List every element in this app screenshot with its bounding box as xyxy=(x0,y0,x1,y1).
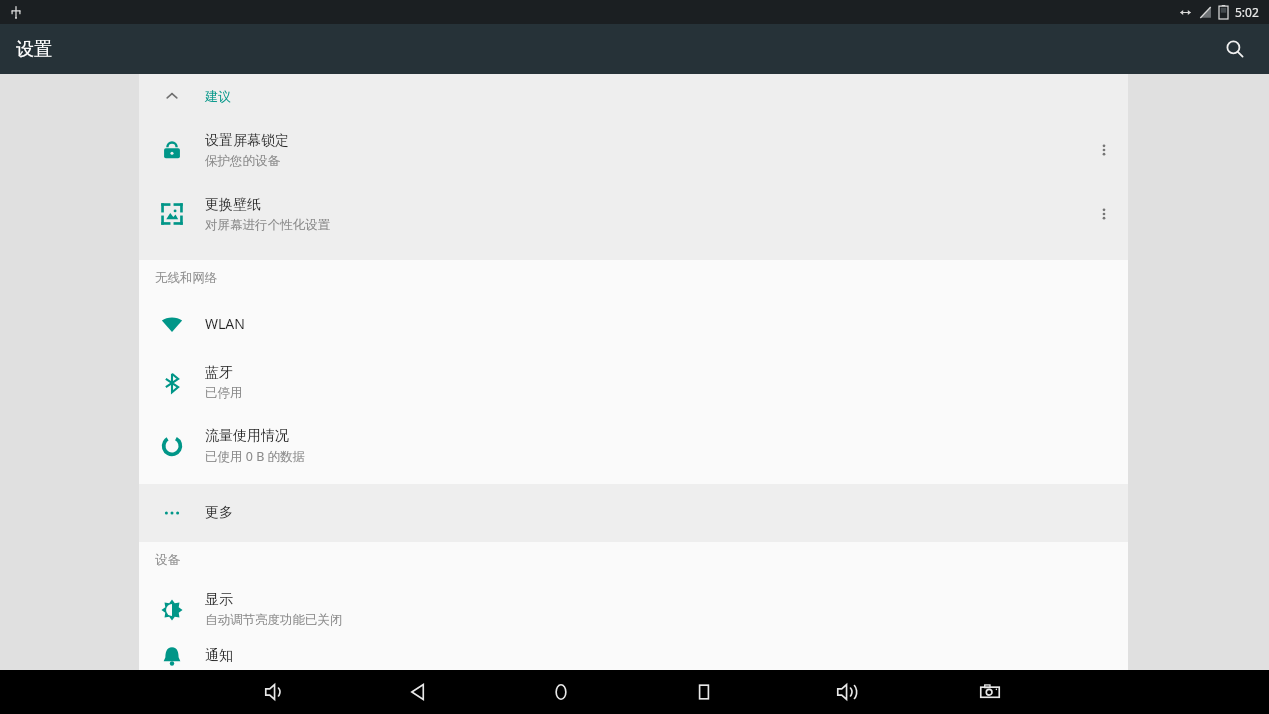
staticText: 自动调节亮度功能已关闭 xyxy=(205,612,343,628)
button[interactable]: Search xyxy=(1213,27,1257,71)
button[interactable]: 蓝牙 xyxy=(139,351,1128,414)
staticText: 保护您的设备 xyxy=(205,153,280,169)
staticText: 通知 xyxy=(205,647,233,665)
staticText: 更多 xyxy=(205,504,233,522)
button[interactable]: WLAN xyxy=(139,296,1128,351)
button[interactable]: 更多 xyxy=(139,484,1128,542)
button[interactable]: Volume down xyxy=(203,670,346,714)
staticText: 设备 xyxy=(155,552,180,568)
staticText: 对屏幕进行个性化设置 xyxy=(205,217,330,233)
button[interactable]: 更换壁纸 xyxy=(139,182,1128,246)
staticText: WLAN xyxy=(205,314,245,333)
staticText: 建议 xyxy=(205,88,231,104)
button[interactable]: 通知 xyxy=(139,641,1128,670)
button[interactable]: More options xyxy=(1080,182,1128,246)
button[interactable]: 显示 xyxy=(139,578,1128,641)
button[interactable]: Screenshot xyxy=(918,670,1061,714)
staticText: 5:02 xyxy=(1235,4,1259,20)
button[interactable]: Home xyxy=(489,670,632,714)
button[interactable]: 流量使用情况 xyxy=(139,414,1128,477)
button[interactable]: Back xyxy=(346,670,489,714)
staticText: 设置 xyxy=(16,38,52,61)
staticText: 已停用 xyxy=(205,385,243,401)
staticText: 流量使用情况 xyxy=(205,427,289,445)
staticText: 设置屏幕锁定 xyxy=(205,132,289,150)
staticText: 显示 xyxy=(205,591,233,609)
staticText: 已使用 0 B 的数据 xyxy=(205,448,306,465)
staticText: 更换壁纸 xyxy=(205,196,261,214)
button[interactable]: 建议 xyxy=(139,74,1128,118)
staticText: 无线和网络 xyxy=(155,270,218,286)
button[interactable]: More options xyxy=(1080,118,1128,182)
button[interactable]: Volume up xyxy=(775,670,918,714)
button[interactable]: 设置屏幕锁定 xyxy=(139,118,1128,182)
staticText: 蓝牙 xyxy=(205,364,233,382)
button[interactable]: Recent apps xyxy=(632,670,775,714)
